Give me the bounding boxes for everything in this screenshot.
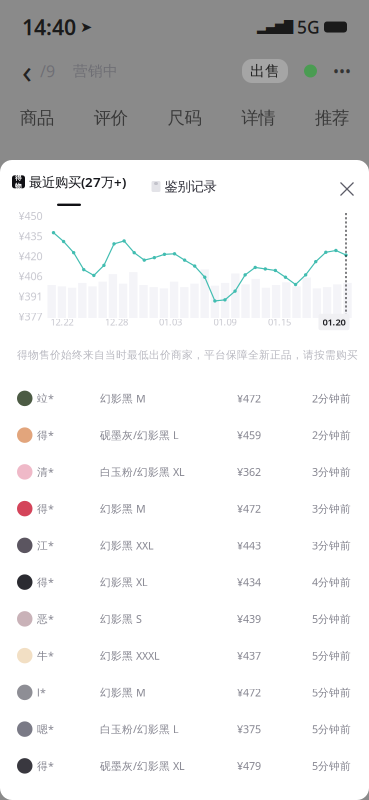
staticText: 01.15 <box>268 316 291 328</box>
staticText: 01.20 <box>322 316 345 328</box>
staticText: 最近购买(27万+) <box>29 173 126 191</box>
button[interactable]: 得* <box>0 747 369 784</box>
staticText: ¥375 <box>237 722 261 736</box>
button[interactable]: l* <box>0 674 369 711</box>
staticText: 01.09 <box>213 316 236 328</box>
staticText: 恶* <box>37 612 54 626</box>
staticText: 幻影黑 S <box>100 612 142 626</box>
staticText: ▂▄▆█ <box>257 20 293 34</box>
staticText: 砚墨灰/幻影黑 L <box>100 428 179 442</box>
button[interactable]: 得* <box>0 564 369 601</box>
staticText: ¥459 <box>237 428 261 442</box>
button[interactable]: More <box>333 60 351 82</box>
button[interactable]: 清* <box>0 453 369 490</box>
staticText: 得* <box>37 575 54 589</box>
staticText: 商品 <box>20 107 54 129</box>
staticText: 3分钟前 <box>312 465 351 479</box>
staticText: ¥434 <box>237 575 261 589</box>
staticText: 12.28 <box>105 316 128 328</box>
staticText: 白玉粉/幻影黑 XL <box>100 465 185 479</box>
staticText: 5G <box>297 15 320 38</box>
staticText: 得物 <box>15 174 22 190</box>
staticText: ¥472 <box>237 501 261 516</box>
button[interactable]: Back <box>18 57 36 85</box>
staticText: 4分钟前 <box>312 575 351 589</box>
staticText: ¥420 <box>18 249 42 263</box>
staticText: 5分钟前 <box>312 722 351 736</box>
staticText: ¥406 <box>18 269 42 283</box>
button[interactable]: 得* <box>0 490 369 527</box>
staticText: 评价 <box>94 107 128 129</box>
staticText: 牛* <box>37 648 54 663</box>
staticText: 5分钟前 <box>312 648 351 663</box>
staticText: ••• <box>333 60 351 82</box>
staticText: ‹ <box>22 50 32 92</box>
staticText: 出售 <box>250 62 280 80</box>
staticText: ➤ <box>80 19 92 35</box>
button[interactable]: 得物 <box>11 173 127 206</box>
staticText: ¥479 <box>237 759 261 773</box>
staticText: 得物售价始终来自当时最低出价商家，平台保障全新正品，请按需购买 <box>17 348 358 361</box>
staticText: 得* <box>37 428 54 442</box>
button[interactable]: 嗯* <box>0 711 369 748</box>
staticText: 鉴别记录 <box>164 178 216 195</box>
staticText: 幻影黑 M <box>100 685 146 699</box>
staticText: 江* <box>37 538 54 552</box>
staticText: ¥437 <box>237 648 261 663</box>
staticText: 幻影黑 M <box>100 501 146 516</box>
staticText: ¥391 <box>18 289 42 303</box>
button[interactable]: 得* <box>0 417 369 454</box>
staticText: 白玉粉/幻影黑 L <box>100 722 179 736</box>
button[interactable]: 鉴别记录 <box>149 172 218 201</box>
staticText: 3分钟前 <box>312 538 351 552</box>
staticText: 推荐 <box>315 107 349 129</box>
staticText: ¥450 <box>18 209 42 223</box>
staticText: 幻影黑 XXXL <box>100 648 160 663</box>
button[interactable]: 牛* <box>0 637 369 674</box>
staticText: 2分钟前 <box>312 428 351 442</box>
staticText: 幻影黑 XL <box>100 575 148 589</box>
staticText: 竝* <box>37 391 54 405</box>
staticText: ¥377 <box>18 309 42 323</box>
staticText: ¥362 <box>237 465 261 479</box>
button[interactable]: 竝* <box>0 380 369 417</box>
staticText: 得* <box>37 759 54 773</box>
staticText: 清* <box>37 465 54 479</box>
staticText: ¥472 <box>237 391 261 405</box>
staticText: 详情 <box>241 107 275 129</box>
staticText: 3分钟前 <box>312 501 351 516</box>
button[interactable]: Close <box>331 173 363 205</box>
staticText: 14:40 <box>22 13 76 41</box>
button[interactable]: 恶* <box>0 600 369 637</box>
staticText: 砚墨灰/幻影黑 XL <box>100 759 185 773</box>
staticText: /9 <box>40 60 55 82</box>
staticText: 12.22 <box>50 316 73 328</box>
staticText: 幻影黑 XXL <box>100 538 154 552</box>
staticText: ¥439 <box>237 612 261 626</box>
staticText: l* <box>37 685 46 699</box>
staticText: 5分钟前 <box>312 759 351 773</box>
staticText: 2分钟前 <box>312 391 351 405</box>
staticText: 营销中 <box>73 62 118 80</box>
button[interactable]: 出售 <box>242 59 288 83</box>
staticText: 嗯* <box>37 722 54 736</box>
staticText: 尺码 <box>167 107 201 129</box>
staticText: ¥435 <box>18 229 42 243</box>
button[interactable]: 江* <box>0 527 369 564</box>
staticText: 得* <box>37 501 54 516</box>
button[interactable]: Share <box>304 64 317 77</box>
staticText: 01.03 <box>159 316 182 328</box>
staticText: 5分钟前 <box>312 685 351 699</box>
staticText: 幻影黑 M <box>100 391 146 405</box>
staticText: 5分钟前 <box>312 612 351 626</box>
staticText: ¥472 <box>237 685 261 699</box>
staticText: ¥443 <box>237 538 261 552</box>
